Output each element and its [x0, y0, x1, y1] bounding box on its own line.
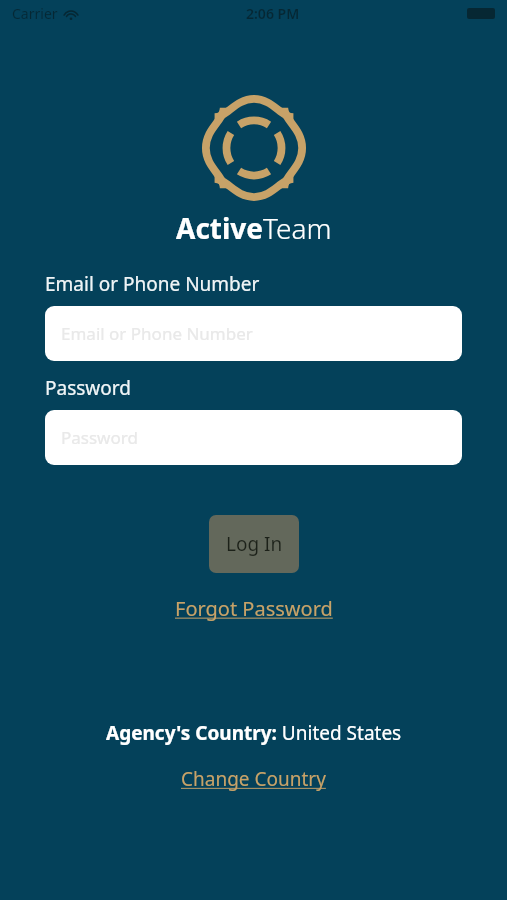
button[interactable]: Password — [45, 410, 462, 465]
button[interactable]: Forgot Password — [169, 591, 339, 626]
button[interactable]: Email or Phone Number — [45, 306, 462, 361]
staticText: Password — [61, 426, 138, 449]
staticText: ActiveTeam — [176, 209, 332, 247]
button[interactable]: Change Country — [175, 762, 332, 796]
staticText: 2:06 PM — [246, 4, 300, 23]
staticText: Email or Phone Number — [45, 271, 260, 297]
staticText: Change Country — [181, 766, 326, 792]
staticText: Agency's Country: United States — [106, 720, 402, 746]
staticText: Carrier — [12, 4, 58, 23]
button[interactable]: Log In — [209, 515, 299, 573]
staticText: Email or Phone Number — [61, 322, 253, 345]
staticText: Forgot Password — [175, 595, 333, 622]
staticText: Log In — [226, 531, 283, 557]
other: Wi-Fi — [63, 8, 79, 20]
staticText: Password — [45, 375, 131, 401]
